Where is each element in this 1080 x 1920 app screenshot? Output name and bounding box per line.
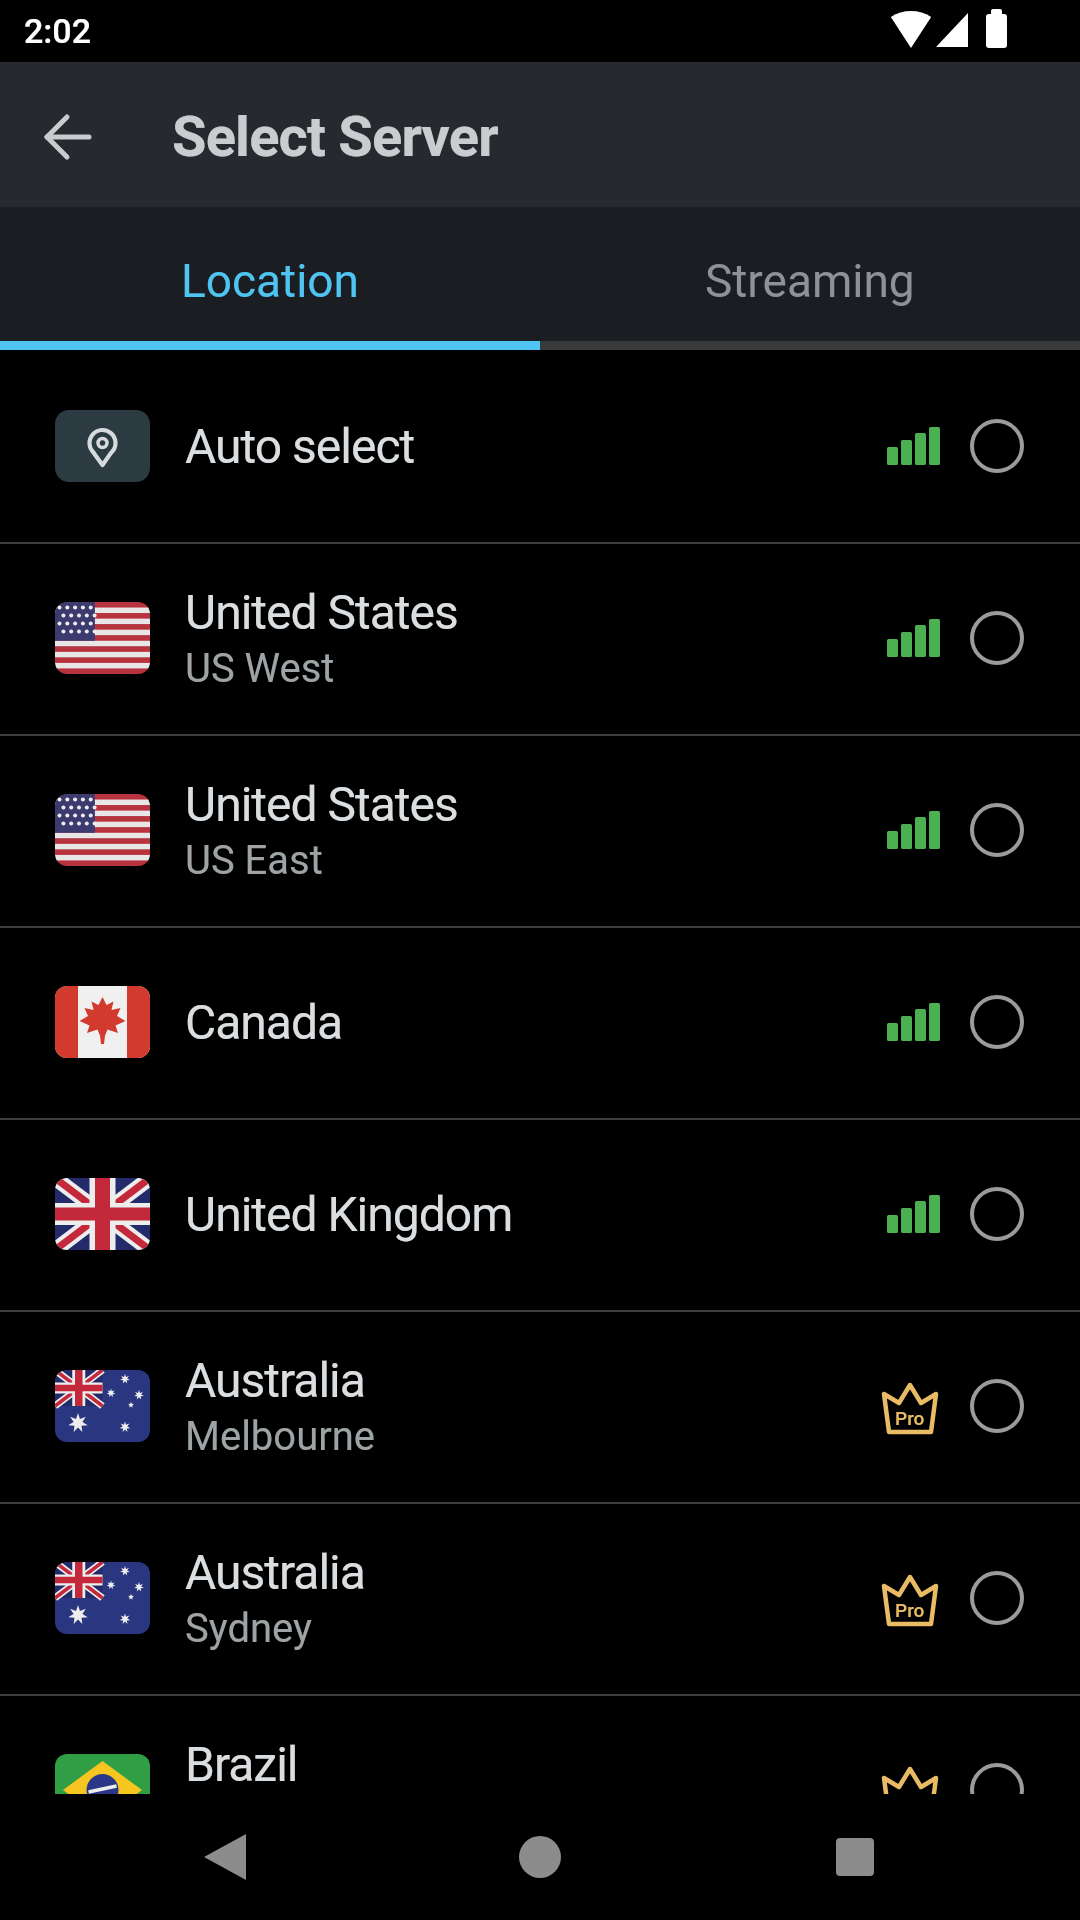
button[interactable]: Brazil bbox=[0, 1694, 1080, 1886]
staticText: Melbourne bbox=[185, 1413, 376, 1460]
button[interactable]: United States bbox=[0, 734, 1080, 926]
button[interactable]: Streaming bbox=[540, 207, 1080, 350]
button[interactable]: United Kingdom bbox=[0, 1118, 1080, 1310]
button[interactable] bbox=[185, 1817, 265, 1897]
staticText: Sydney bbox=[185, 1605, 312, 1652]
button[interactable]: Auto select bbox=[0, 350, 1080, 542]
button[interactable]: Australia bbox=[0, 1310, 1080, 1502]
staticText: US East bbox=[185, 837, 323, 884]
staticText: United States bbox=[185, 584, 458, 640]
staticText: Pro bbox=[895, 1407, 925, 1429]
staticText: US West bbox=[185, 645, 335, 692]
staticText: United States bbox=[185, 776, 458, 832]
staticText: 2:02 bbox=[24, 11, 91, 51]
staticText: Pro bbox=[895, 1599, 925, 1621]
staticText: Streaming bbox=[705, 254, 915, 308]
staticText: Auto select bbox=[185, 418, 415, 474]
staticText: Canada bbox=[185, 994, 343, 1050]
button[interactable]: Location bbox=[0, 207, 540, 350]
button[interactable]: Australia bbox=[0, 1502, 1080, 1694]
button[interactable] bbox=[28, 96, 110, 178]
staticText: Sao Paulo bbox=[185, 1797, 365, 1844]
staticText: Brazil bbox=[185, 1736, 298, 1792]
staticText: Select Server bbox=[172, 104, 498, 170]
staticText: Australia bbox=[185, 1352, 365, 1408]
button[interactable]: United States bbox=[0, 542, 1080, 734]
staticText: United Kingdom bbox=[185, 1186, 513, 1242]
button[interactable]: Canada bbox=[0, 926, 1080, 1118]
button[interactable] bbox=[815, 1817, 895, 1897]
staticText: Location bbox=[181, 254, 359, 308]
button[interactable] bbox=[500, 1817, 580, 1897]
staticText: Australia bbox=[185, 1544, 365, 1600]
